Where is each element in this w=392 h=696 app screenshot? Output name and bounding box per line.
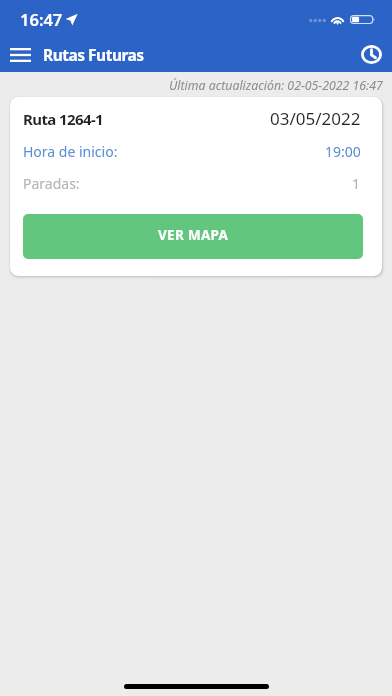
button[interactable]: Menu <box>5 39 36 70</box>
staticText: 16:47 <box>20 8 63 30</box>
staticText: 19:00 <box>325 142 361 161</box>
button[interactable]: Ruta 1264-1 <box>10 97 382 276</box>
staticText: Rutas Futuras <box>43 44 144 65</box>
staticText: Ruta 1264-1 <box>23 109 104 129</box>
staticText: VER MAPA <box>158 226 229 244</box>
staticText: 03/05/2022 <box>270 107 361 130</box>
button[interactable]: VER MAPA <box>23 214 363 259</box>
button[interactable]: History <box>356 39 387 70</box>
staticText: Última actualización: 02-05-2022 16:47 <box>169 77 383 94</box>
staticText: 1 <box>352 174 361 193</box>
staticText: Hora de inicio: <box>23 142 118 161</box>
staticText: Paradas: <box>23 174 80 193</box>
